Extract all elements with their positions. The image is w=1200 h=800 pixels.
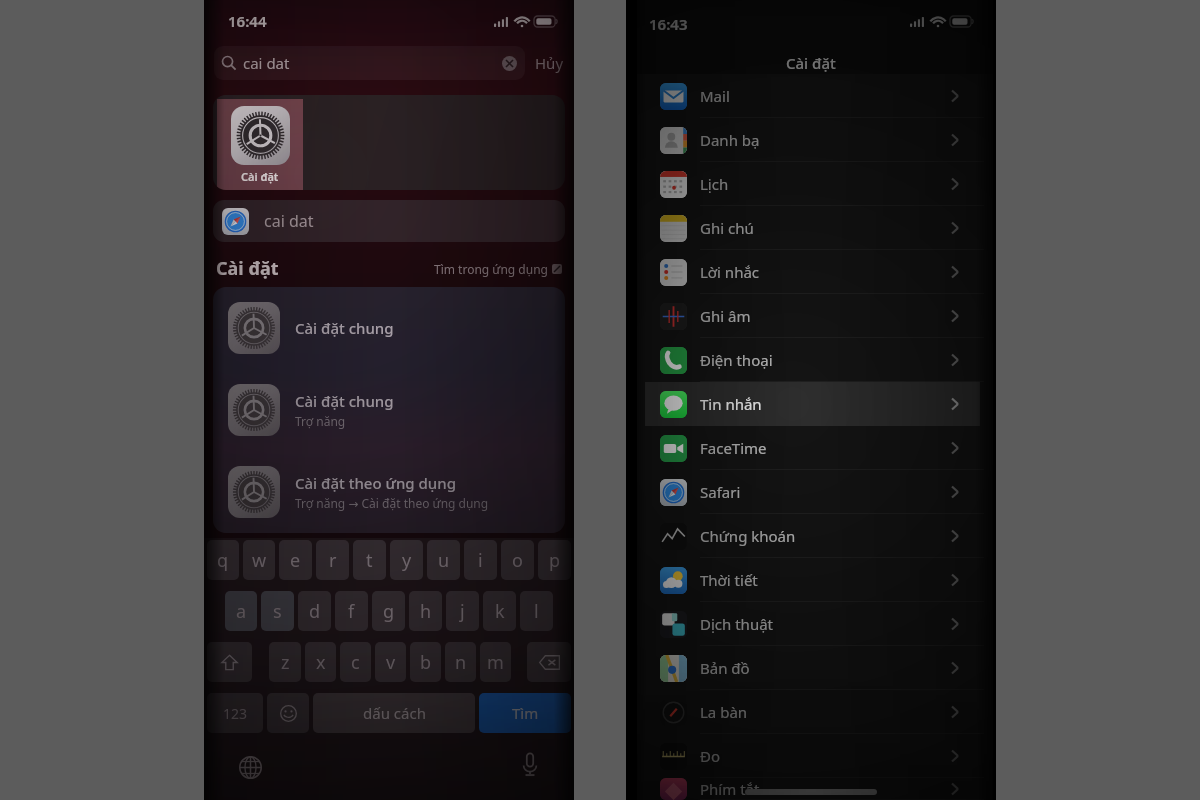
button[interactable]: Đo bbox=[637, 734, 993, 778]
button[interactable]: p bbox=[538, 540, 571, 580]
staticText: cai dat bbox=[243, 53, 290, 73]
button[interactable]: Cài đặt chung bbox=[213, 287, 565, 369]
button[interactable]: Tìm bbox=[479, 693, 571, 733]
staticText: r bbox=[329, 548, 337, 573]
button[interactable]: Ghi chú bbox=[637, 206, 993, 250]
button[interactable]: Cài đặt bbox=[217, 99, 303, 190]
button[interactable]: m bbox=[480, 642, 511, 682]
button[interactable]: t bbox=[353, 540, 386, 580]
button[interactable]: u bbox=[427, 540, 460, 580]
button[interactable]: Emoji bbox=[267, 693, 309, 733]
staticText: Điện thoại bbox=[700, 350, 773, 370]
button[interactable]: Thời tiết bbox=[637, 558, 993, 602]
button[interactable]: h bbox=[409, 591, 442, 631]
button[interactable]: FaceTime bbox=[637, 426, 993, 470]
button[interactable]: j bbox=[446, 591, 479, 631]
staticText: u bbox=[438, 548, 450, 573]
button[interactable]: a bbox=[225, 591, 257, 631]
button[interactable]: Change language bbox=[234, 751, 266, 783]
button[interactable]: Dictation bbox=[514, 749, 546, 781]
staticText: Thời tiết bbox=[700, 570, 758, 590]
button[interactable]: l bbox=[520, 591, 553, 631]
staticText: w bbox=[252, 548, 267, 573]
button[interactable]: c bbox=[340, 642, 371, 682]
staticText: z bbox=[281, 650, 290, 675]
button[interactable]: x bbox=[305, 642, 336, 682]
staticText: Bản đồ bbox=[700, 658, 750, 678]
button[interactable]: n bbox=[445, 642, 476, 682]
staticText: d bbox=[309, 599, 321, 624]
button[interactable]: q bbox=[207, 540, 239, 580]
button[interactable]: w bbox=[243, 540, 275, 580]
button[interactable]: v bbox=[375, 642, 406, 682]
staticText: c bbox=[351, 650, 360, 675]
button[interactable]: d bbox=[298, 591, 331, 631]
staticText: b bbox=[420, 650, 432, 675]
staticText: Cài đặt bbox=[786, 53, 836, 73]
staticText: Ghi chú bbox=[700, 218, 754, 238]
button[interactable]: cai dat bbox=[204, 44, 574, 82]
staticText: Chứng khoán bbox=[700, 526, 796, 546]
button[interactable]: 123 bbox=[207, 693, 263, 733]
button[interactable]: La bàn bbox=[637, 690, 993, 734]
staticText: Cài đặt chung bbox=[295, 318, 394, 338]
staticText: Lịch bbox=[700, 174, 729, 194]
staticText: FaceTime bbox=[700, 438, 767, 458]
button[interactable]: Chứng khoán bbox=[637, 514, 993, 558]
staticText: x bbox=[316, 650, 326, 675]
staticText: m bbox=[487, 650, 504, 675]
staticText: Safari bbox=[700, 482, 741, 502]
staticText: Tìm trong ứng dụng bbox=[434, 261, 548, 277]
staticText: f bbox=[348, 599, 355, 624]
button[interactable]: i bbox=[464, 540, 497, 580]
staticText: q bbox=[217, 548, 229, 573]
button[interactable]: Mail bbox=[637, 74, 993, 118]
button[interactable]: Danh bạ bbox=[637, 118, 993, 162]
button[interactable]: e bbox=[279, 540, 312, 580]
button[interactable]: Bản đồ bbox=[637, 646, 993, 690]
button[interactable]: Lời nhắc bbox=[637, 250, 993, 294]
button[interactable]: Clear bbox=[502, 56, 517, 71]
staticText: j bbox=[460, 599, 465, 624]
button[interactable]: z bbox=[269, 642, 301, 682]
button[interactable]: Backspace bbox=[527, 642, 571, 682]
button[interactable]: g bbox=[372, 591, 405, 631]
staticText: e bbox=[290, 548, 301, 573]
staticText: Cài đặt bbox=[216, 256, 279, 281]
button[interactable]: b bbox=[410, 642, 441, 682]
button[interactable]: dấu cách bbox=[313, 693, 475, 733]
staticText: p bbox=[549, 548, 561, 573]
button[interactable]: Safari bbox=[637, 470, 993, 514]
button[interactable]: r bbox=[316, 540, 349, 580]
staticText: k bbox=[495, 599, 505, 624]
button[interactable]: Tin nhắn bbox=[637, 382, 993, 426]
button[interactable]: Cài đặt theo ứng dụng bbox=[213, 451, 565, 533]
staticText: Ghi âm bbox=[700, 306, 751, 326]
button[interactable]: s bbox=[261, 591, 294, 631]
staticText: La bàn bbox=[700, 702, 748, 722]
staticText: Phím tắt bbox=[700, 779, 760, 799]
button[interactable]: Shift bbox=[207, 642, 252, 682]
staticText: dấu cách bbox=[363, 703, 426, 723]
staticText: 16:43 bbox=[649, 14, 688, 34]
staticText: Trợ năng → Cài đặt theo ứng dụng bbox=[295, 495, 489, 511]
button[interactable]: Phím tắt bbox=[637, 778, 993, 800]
staticText: Mail bbox=[700, 86, 730, 106]
button[interactable]: Hủy bbox=[525, 53, 574, 73]
button[interactable]: cai dat bbox=[213, 200, 565, 242]
button[interactable]: Ghi âm bbox=[637, 294, 993, 338]
button[interactable]: Cài đặt chung bbox=[213, 369, 565, 451]
button[interactable]: Dịch thuật bbox=[637, 602, 993, 646]
button[interactable]: y bbox=[390, 540, 423, 580]
staticText: Tìm bbox=[512, 703, 539, 723]
button[interactable]: Tìm trong ứng dụng bbox=[434, 261, 562, 277]
button[interactable]: f bbox=[335, 591, 368, 631]
staticText: 123 bbox=[223, 704, 248, 723]
button[interactable]: Lịch bbox=[637, 162, 993, 206]
staticText: o bbox=[512, 548, 523, 573]
staticText: Lời nhắc bbox=[700, 262, 760, 282]
button[interactable]: o bbox=[501, 540, 534, 580]
button[interactable]: Điện thoại bbox=[637, 338, 993, 382]
staticText: i bbox=[478, 548, 483, 573]
button[interactable]: k bbox=[483, 591, 516, 631]
